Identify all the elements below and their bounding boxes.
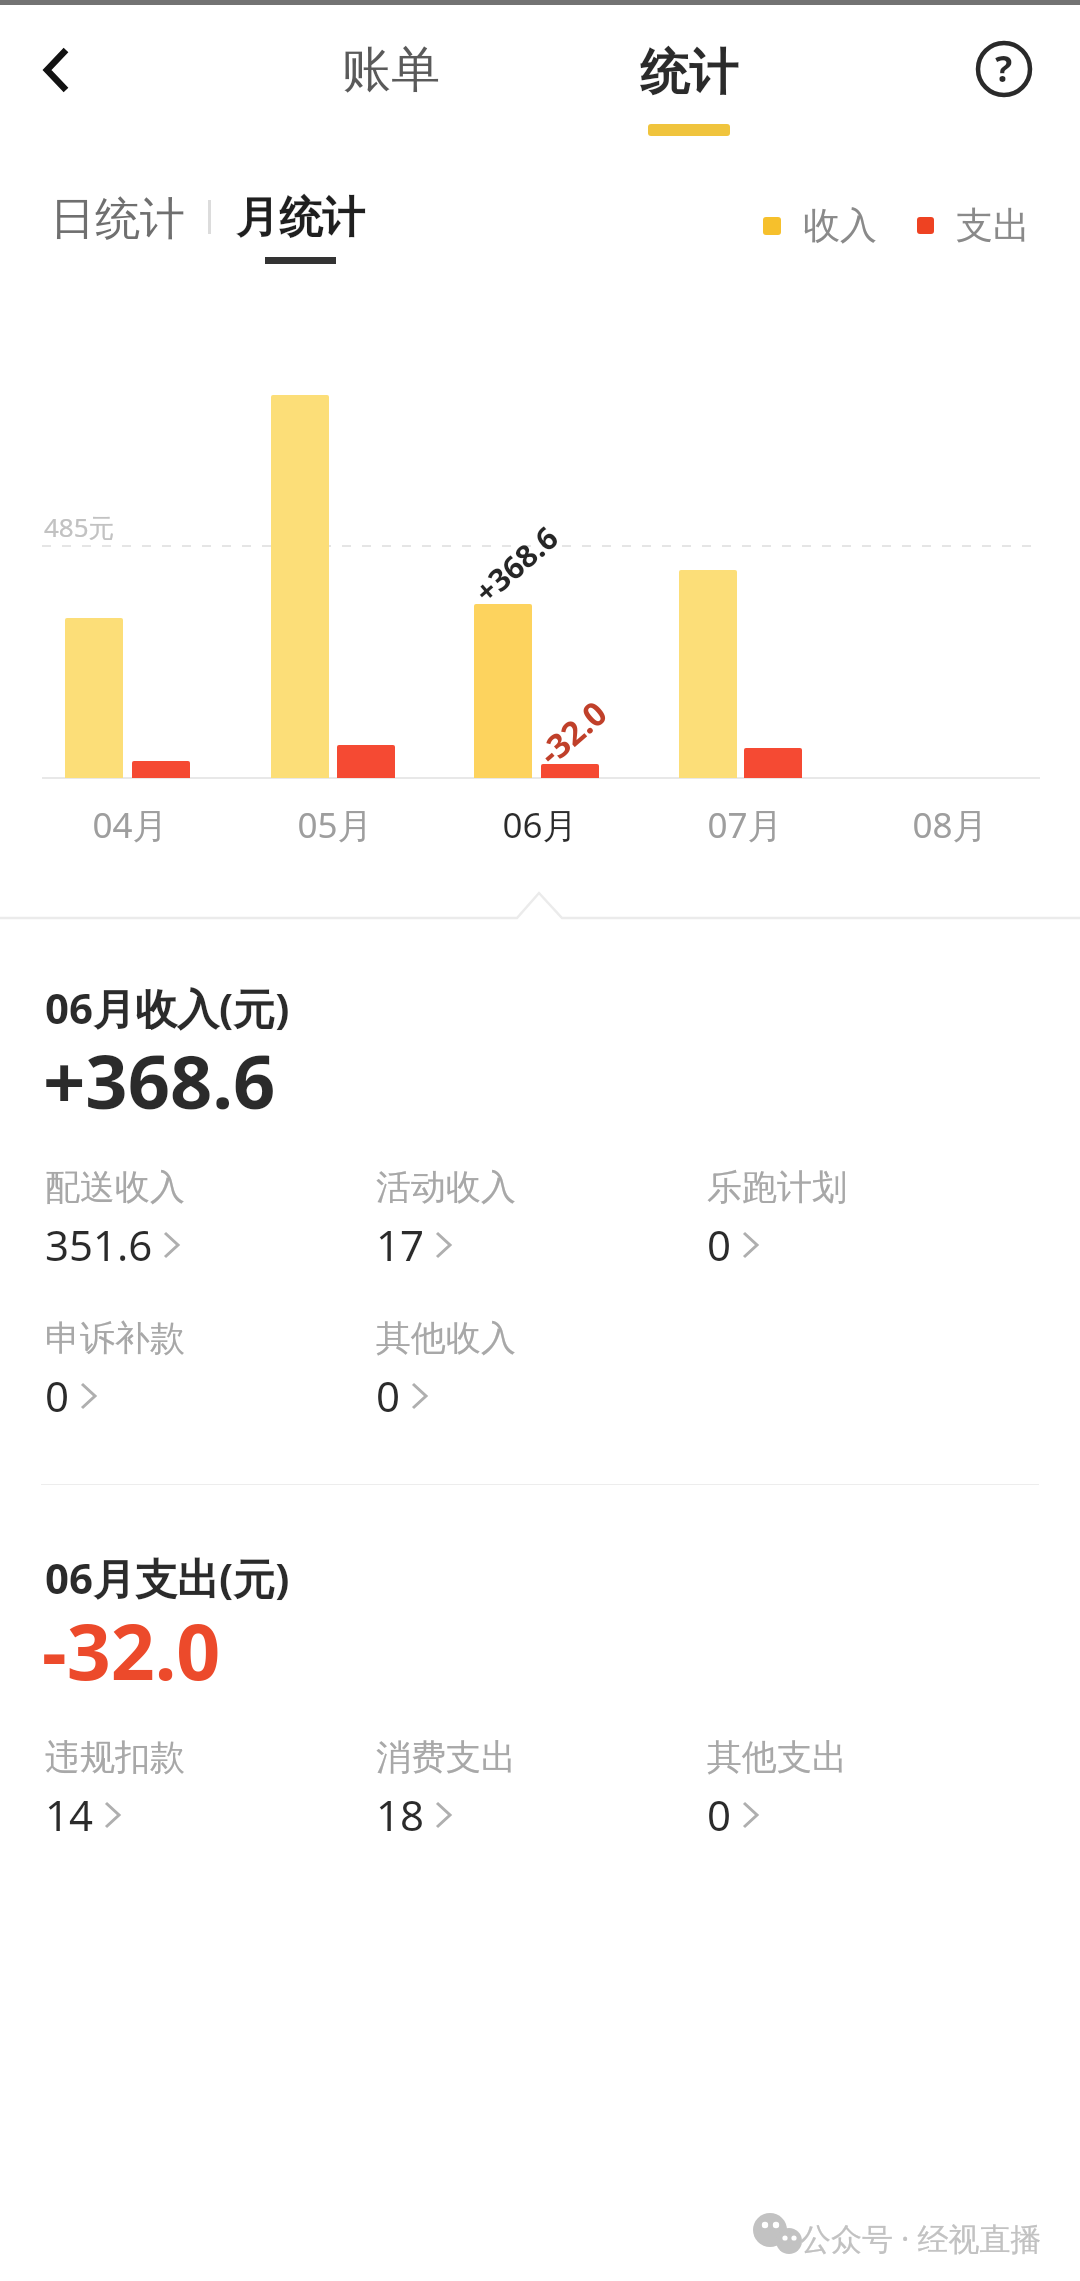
button[interactable]: Help [962,27,1046,111]
staticText: 其他支出 [707,1735,847,1779]
staticText: -32.0 [42,1598,221,1703]
staticText: 06月 [502,801,578,849]
staticText: 月统计 [236,191,365,245]
staticText: 06月支出(元) [45,1549,290,1606]
button[interactable]: 申诉补款 [45,1316,315,1424]
staticText: 17 [376,1216,425,1273]
staticText: 0 [707,1216,732,1273]
staticText: 统计 [640,42,738,104]
staticText: 违规扣款 [45,1735,185,1779]
button[interactable]: 其他收入 [376,1316,646,1424]
button[interactable]: 消费支出 [376,1735,646,1843]
button[interactable]: 08月 [880,795,1020,855]
button[interactable]: 账单 [321,39,461,129]
staticText: 485元 [44,509,115,545]
staticText: +368.6 [43,1030,276,1131]
staticText: 其他收入 [376,1316,516,1360]
staticText: 申诉补款 [45,1316,185,1360]
staticText: 配送收入 [45,1165,185,1209]
staticText: 04月 [92,801,168,849]
staticText: 351.6 [45,1216,153,1273]
staticText: -32.0 [529,690,616,775]
button[interactable]: 07月 [675,795,815,855]
staticText: 支出 [956,202,1030,249]
staticText: 08月 [912,801,988,849]
staticText: 06月收入(元) [45,979,290,1036]
staticText: ? [995,44,1013,93]
staticText: 0 [707,1786,732,1843]
button[interactable]: 其他支出 [707,1735,977,1843]
staticText: 0 [45,1367,70,1424]
button[interactable]: 日统计 [50,191,185,248]
staticText: 07月 [707,801,783,849]
button[interactable]: 活动收入 [376,1165,646,1273]
button[interactable]: Back [10,25,104,119]
staticText: 0 [376,1367,401,1424]
button[interactable]: 05月 [265,795,405,855]
staticText: 14 [45,1786,94,1843]
staticText: 收入 [803,202,877,249]
staticText: 公众号 · 经视直播 [800,2217,1042,2259]
button[interactable]: 违规扣款 [45,1735,315,1843]
button[interactable]: 统计 [619,42,759,156]
staticText: 日统计 [50,191,185,248]
button[interactable]: 04月 [60,795,200,855]
button[interactable]: 配送收入 [45,1165,315,1273]
staticText: 活动收入 [376,1165,516,1209]
staticText: 乐跑计划 [707,1165,847,1209]
staticText: 账单 [342,39,440,101]
button[interactable]: 乐跑计划 [707,1165,977,1273]
staticText: 消费支出 [376,1735,516,1779]
button[interactable]: 06月 [470,795,610,855]
button[interactable]: 月统计 [236,191,365,264]
staticText: 05月 [297,801,373,849]
staticText: +368.6 [465,516,567,612]
staticText: 18 [376,1786,425,1843]
